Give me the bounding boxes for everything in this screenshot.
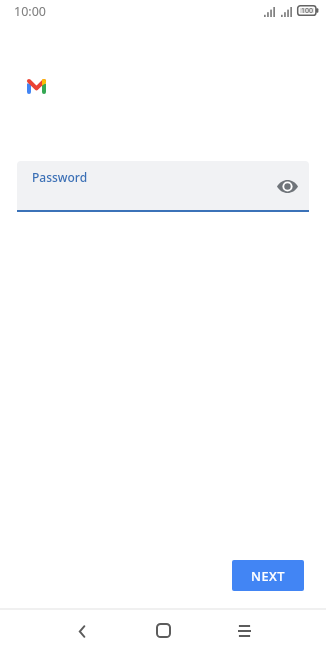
button[interactable]: Home [142,610,184,652]
button[interactable]: Recent apps [223,610,265,652]
button[interactable]: Password [17,161,309,212]
button[interactable]: Show password [274,173,300,199]
button[interactable]: Back [61,610,103,652]
staticText: NEXT [251,567,285,584]
button[interactable]: NEXT [232,560,304,591]
staticText: Password [32,169,88,185]
staticText: 10:00 [14,3,46,20]
staticText: 100 [301,6,314,16]
